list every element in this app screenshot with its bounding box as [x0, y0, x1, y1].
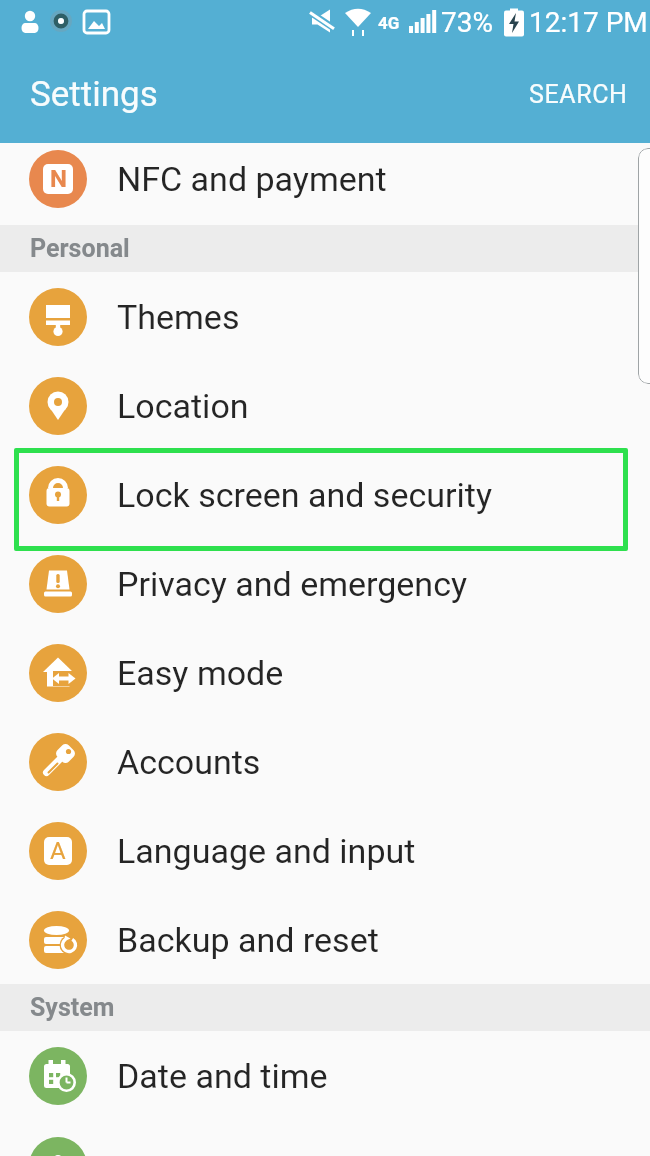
- staticText: Location: [117, 386, 249, 426]
- staticText: System: [30, 993, 115, 1022]
- staticText: Privacy and emergency: [117, 564, 468, 604]
- staticText: Accounts: [117, 742, 261, 782]
- button[interactable]: Backup and reset: [0, 895, 650, 984]
- staticText: Personal: [30, 234, 130, 263]
- button[interactable]: SEARCH: [517, 68, 640, 121]
- staticText: Backup and reset: [117, 920, 379, 960]
- staticText: 4G: [378, 13, 400, 33]
- button[interactable]: Lock screen and security: [0, 450, 650, 539]
- staticText: Settings: [30, 74, 158, 115]
- button[interactable]: Privacy and emergency: [0, 539, 650, 628]
- staticText: N: [50, 165, 67, 193]
- button[interactable]: Easy mode: [0, 628, 650, 717]
- staticText: Lock screen and security: [117, 475, 492, 515]
- staticText: Themes: [117, 297, 240, 337]
- staticText: Date and time: [117, 1056, 328, 1096]
- button[interactable]: A: [0, 806, 650, 895]
- staticText: 73%: [441, 6, 493, 39]
- button[interactable]: Location: [0, 361, 650, 450]
- button[interactable]: Themes: [0, 272, 650, 361]
- staticText: NFC and payment: [117, 159, 387, 199]
- button[interactable]: N: [0, 143, 650, 215]
- staticText: 12:17 PM: [529, 6, 648, 39]
- staticText: Easy mode: [117, 653, 284, 693]
- button[interactable]: Date and time: [0, 1031, 650, 1120]
- staticText: Language and input: [117, 831, 416, 871]
- staticText: A: [50, 837, 66, 865]
- staticText: SEARCH: [529, 80, 628, 109]
- button[interactable]: Accounts: [0, 717, 650, 806]
